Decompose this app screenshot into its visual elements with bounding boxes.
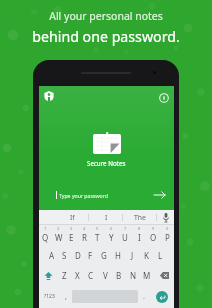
staticText: S <box>62 250 67 261</box>
staticText: D <box>75 250 81 261</box>
staticText: W <box>55 232 63 243</box>
button[interactable]: 5 <box>91 225 104 245</box>
staticText: Type your password <box>59 192 108 199</box>
staticText: 4 <box>83 226 86 231</box>
staticText: Q <box>42 232 49 243</box>
button[interactable]: ?123 <box>39 285 60 308</box>
button[interactable]: Z <box>58 265 71 285</box>
staticText: L <box>158 250 163 261</box>
button[interactable]: N <box>126 265 140 285</box>
staticText: 5 <box>96 226 99 231</box>
staticText: T <box>95 232 100 243</box>
button[interactable]: 1 <box>39 225 52 245</box>
staticText: Secure Notes <box>87 159 126 167</box>
button[interactable]: I <box>89 210 123 224</box>
button[interactable]: 6 <box>104 225 118 245</box>
button[interactable]: Info <box>159 93 169 103</box>
button[interactable]: 2 <box>52 225 65 245</box>
button[interactable]: L <box>153 245 167 265</box>
staticText: 6 <box>110 226 113 231</box>
button[interactable]: Enter <box>156 291 168 303</box>
staticText: The <box>134 213 146 222</box>
button[interactable]: K <box>139 245 153 265</box>
button[interactable]: Secure Notes <box>92 132 122 156</box>
staticText: U <box>122 232 128 243</box>
button[interactable]: If <box>55 210 89 224</box>
button[interactable]: 3 <box>65 225 78 245</box>
button[interactable]: S <box>58 245 71 265</box>
staticText: X <box>75 270 80 281</box>
button[interactable]: Backspace <box>154 265 174 285</box>
button[interactable]: J <box>125 245 139 265</box>
staticText: I <box>105 213 108 222</box>
staticText: 2 <box>57 226 60 231</box>
staticText: P <box>165 232 170 243</box>
button[interactable]: Voice input <box>157 210 174 224</box>
button[interactable]: C <box>84 265 98 285</box>
staticText: Z <box>62 270 67 281</box>
staticText: 7 <box>124 226 127 231</box>
staticText: ?123 <box>44 293 55 300</box>
button[interactable]: D <box>71 245 84 265</box>
button[interactable]: H <box>111 245 125 265</box>
staticText: I <box>138 232 141 243</box>
staticText: 3 <box>70 226 73 231</box>
staticText: behind one password. <box>32 27 180 46</box>
staticText: 8 <box>138 226 141 231</box>
staticText: If <box>70 213 75 222</box>
button[interactable]: 8 <box>132 225 146 245</box>
staticText: Y <box>109 232 114 243</box>
staticText: 0 <box>166 226 169 231</box>
staticText: N <box>130 270 137 281</box>
staticText: G <box>101 250 107 261</box>
staticText: E <box>69 232 74 243</box>
button[interactable]: 4 <box>78 225 91 245</box>
other: App logo <box>44 91 54 101</box>
staticText: A <box>49 250 55 261</box>
staticText: , <box>65 292 67 302</box>
button[interactable]: Type your password <box>56 191 165 199</box>
button[interactable]: B <box>112 265 126 285</box>
button[interactable]: V <box>98 265 112 285</box>
staticText: C <box>88 270 94 281</box>
button[interactable]: The <box>123 210 157 224</box>
button[interactable]: M <box>140 265 154 285</box>
staticText: H <box>115 250 121 261</box>
button[interactable]: F <box>84 245 97 265</box>
staticText: 1 <box>44 226 47 231</box>
button[interactable]: Shift <box>39 265 58 285</box>
staticText: M <box>143 270 151 281</box>
staticText: O <box>150 232 157 243</box>
button[interactable]: 0 <box>160 225 174 245</box>
staticText: All your personal notes <box>49 9 163 23</box>
button[interactable]: . <box>138 285 150 308</box>
button[interactable]: , <box>60 285 72 308</box>
staticText: R <box>82 232 87 243</box>
staticText: F <box>88 250 93 261</box>
staticText: B <box>116 270 122 281</box>
staticText: 9 <box>152 226 155 231</box>
button[interactable]: X <box>71 265 84 285</box>
button[interactable]: A <box>45 245 58 265</box>
button[interactable]: 7 <box>118 225 132 245</box>
staticText: J <box>131 250 134 261</box>
staticText: . <box>143 292 145 302</box>
button[interactable]: G <box>97 245 111 265</box>
button[interactable]: 9 <box>146 225 160 245</box>
staticText: K <box>144 250 149 261</box>
staticText: V <box>103 270 108 281</box>
